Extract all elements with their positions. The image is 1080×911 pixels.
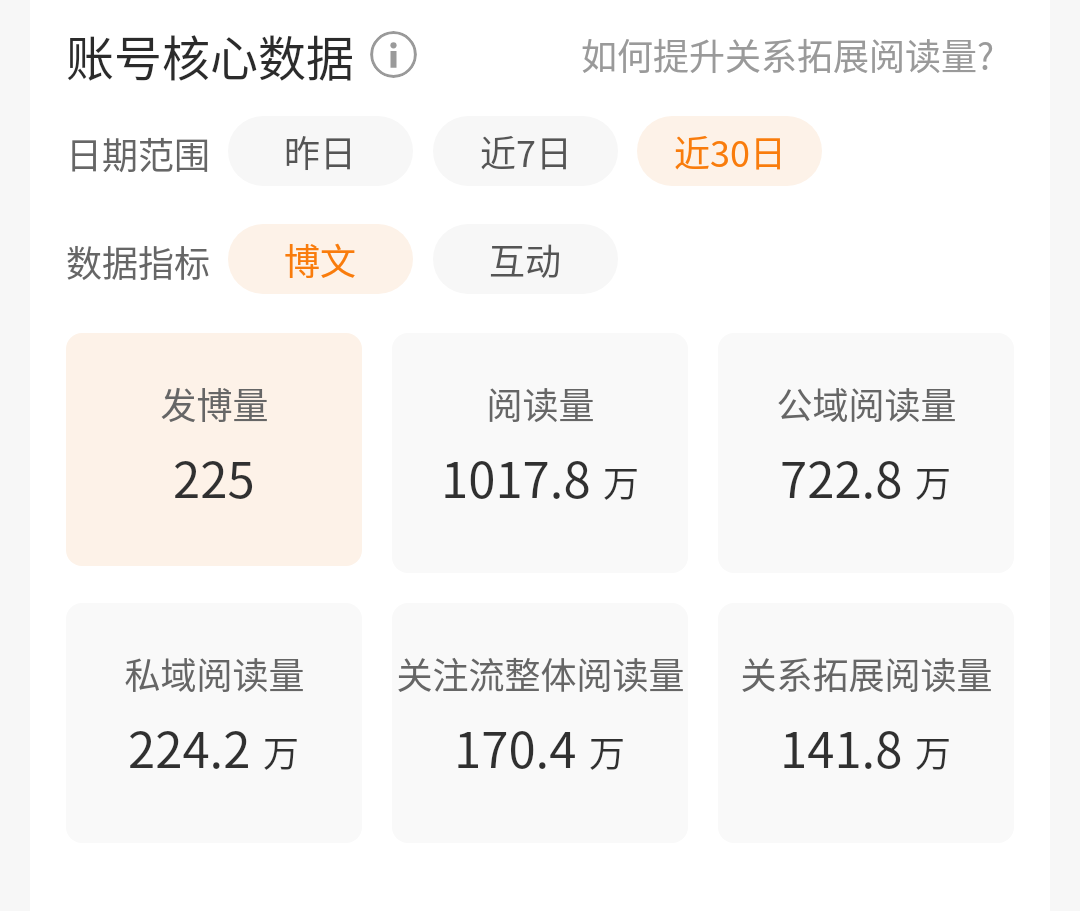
staticText: 数据指标 bbox=[66, 235, 211, 287]
button[interactable]: 博文 bbox=[228, 224, 413, 294]
staticText: 日期范围 bbox=[66, 127, 211, 179]
staticText: 发博量 bbox=[160, 377, 269, 429]
staticText: 私域阅读量 bbox=[124, 647, 305, 699]
staticText: 万 bbox=[915, 725, 952, 777]
staticText: 141.8 bbox=[780, 711, 903, 782]
button[interactable]: 阅读量 bbox=[392, 333, 688, 573]
staticText: 万 bbox=[915, 455, 952, 507]
button[interactable]: 昨日 bbox=[228, 116, 413, 186]
staticText: 关注流整体阅读量 bbox=[396, 647, 685, 699]
button[interactable]: 互动 bbox=[433, 224, 618, 294]
staticText: 关系拓展阅读量 bbox=[740, 647, 993, 699]
button[interactable]: 近30日 bbox=[637, 116, 822, 186]
staticText: 万 bbox=[263, 725, 300, 777]
staticText: 1017.8 bbox=[441, 441, 591, 512]
button[interactable]: 关注流整体阅读量 bbox=[392, 603, 688, 843]
button[interactable]: 关系拓展阅读量 bbox=[718, 603, 1014, 843]
staticText: 万 bbox=[589, 725, 626, 777]
button[interactable]: 如何提升关系拓展阅读量? bbox=[581, 28, 995, 80]
button[interactable]: 公域阅读量 bbox=[718, 333, 1014, 573]
button[interactable]: 私域阅读量 bbox=[66, 603, 362, 843]
staticText: 账号核心数据 bbox=[66, 20, 355, 90]
staticText: 722.8 bbox=[780, 441, 903, 512]
staticText: 昨日 bbox=[284, 125, 357, 177]
staticText: 万 bbox=[603, 455, 640, 507]
staticText: 224.2 bbox=[128, 711, 251, 782]
staticText: 近7日 bbox=[480, 125, 572, 177]
staticText: 互动 bbox=[489, 233, 562, 285]
button[interactable]: 发博量 bbox=[66, 333, 362, 566]
button[interactable]: 近7日 bbox=[433, 116, 618, 186]
staticText: 近30日 bbox=[674, 125, 786, 177]
staticText: 225 bbox=[173, 441, 255, 512]
staticText: 公域阅读量 bbox=[776, 377, 957, 429]
staticText: 博文 bbox=[284, 233, 357, 285]
staticText: 170.4 bbox=[454, 711, 577, 782]
staticText: 阅读量 bbox=[486, 377, 595, 429]
button[interactable]: 指标说明 bbox=[370, 31, 417, 78]
